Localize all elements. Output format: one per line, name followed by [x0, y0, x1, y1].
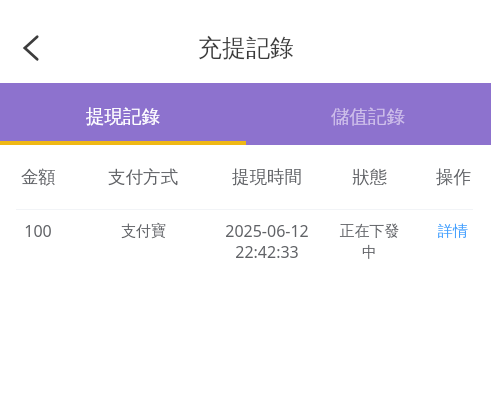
staticText: 儲值記錄: [331, 105, 405, 128]
button[interactable]: Back: [7, 24, 54, 71]
staticText: 操作: [436, 166, 471, 188]
staticText: 提現時間: [232, 166, 302, 188]
staticText: 提現記錄: [86, 105, 160, 128]
staticText: 支付方式: [108, 166, 178, 188]
button[interactable]: 提現記錄: [0, 83, 245, 145]
button[interactable]: 100: [0, 210, 491, 282]
button[interactable]: 儲值記錄: [245, 83, 491, 145]
staticText: 金額: [21, 166, 56, 188]
staticText: 100: [24, 220, 52, 242]
staticText: 狀態: [352, 166, 387, 188]
staticText: 充提記錄: [198, 33, 294, 63]
staticText: 詳情: [438, 222, 468, 241]
staticText: 支付寶: [121, 222, 166, 241]
staticText: 正在下發中: [338, 222, 401, 262]
staticText: 2025-06-12 22:42:33: [216, 220, 318, 263]
button[interactable]: 詳情: [415, 210, 491, 241]
